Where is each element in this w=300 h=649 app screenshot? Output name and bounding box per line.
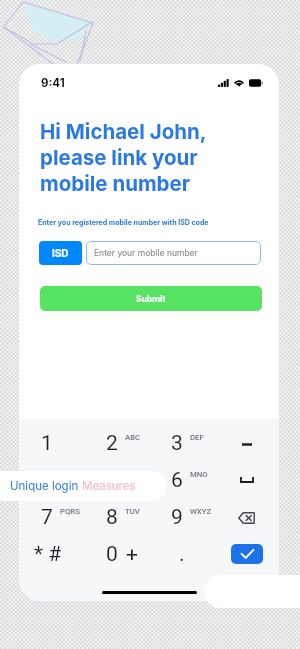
- button[interactable]: Submit: [40, 286, 262, 311]
- staticText: WXYZ: [190, 507, 212, 516]
- button[interactable]: [84, 462, 149, 498]
- staticText: .: [179, 542, 185, 567]
- button[interactable]: [149, 536, 214, 572]
- staticText: 0: [106, 542, 118, 567]
- staticText: 9: [171, 505, 183, 530]
- button[interactable]: Enter your mobile number: [86, 241, 261, 265]
- button[interactable]: [84, 536, 149, 572]
- button[interactable]: [19, 500, 84, 536]
- staticText: PQRS: [60, 507, 80, 516]
- button[interactable]: [84, 500, 149, 536]
- staticText: 4: [41, 468, 53, 493]
- staticText: 6: [171, 468, 183, 493]
- button[interactable]: [84, 426, 149, 462]
- staticText: ISD: [52, 247, 69, 259]
- staticText: 7: [41, 505, 53, 530]
- staticText: 9:41: [41, 76, 65, 90]
- staticText: Enter you registered mobile number with …: [38, 218, 209, 226]
- staticText: MNO: [190, 470, 208, 479]
- staticText: Enter your mobile number: [94, 248, 198, 258]
- button[interactable]: [149, 500, 214, 536]
- staticText: DEF: [190, 433, 204, 442]
- button[interactable]: Unique login: [0, 471, 166, 501]
- staticText: Submit: [136, 294, 166, 304]
- staticText: * #: [34, 542, 62, 567]
- staticText: TUV: [125, 507, 140, 516]
- button[interactable]: [149, 462, 214, 498]
- button[interactable]: [19, 462, 84, 498]
- button[interactable]: [19, 536, 84, 572]
- button[interactable]: Confirm: [231, 544, 263, 564]
- staticText: 1: [41, 431, 53, 456]
- staticText: ABC: [125, 433, 141, 442]
- button[interactable]: Backspace: [214, 500, 279, 536]
- button[interactable]: [149, 426, 214, 462]
- staticText: 5: [106, 468, 118, 493]
- button[interactable]: Space: [214, 462, 279, 498]
- button[interactable]: [19, 426, 84, 462]
- staticText: Hi Michael John, please link your mobile…: [40, 119, 207, 196]
- staticText: +: [126, 542, 138, 567]
- staticText: 2: [106, 431, 118, 456]
- button[interactable]: ISD: [39, 241, 82, 265]
- button[interactable]: Dash: [214, 426, 279, 462]
- staticText: Measures: [82, 479, 136, 493]
- staticText: 8: [106, 505, 118, 530]
- staticText: Unique login: [10, 479, 82, 493]
- staticText: 3: [171, 431, 183, 456]
